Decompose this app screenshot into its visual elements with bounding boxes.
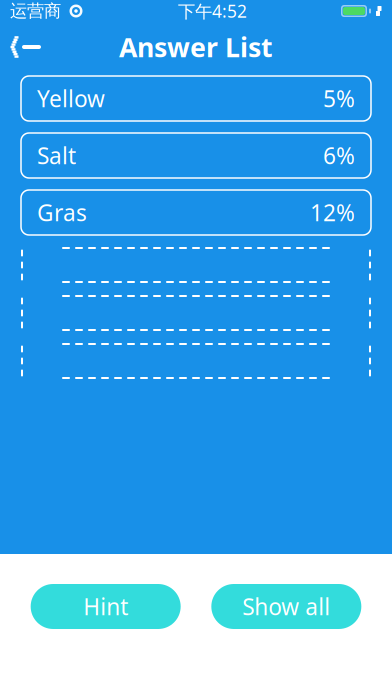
staticText: 运营商: [10, 0, 61, 22]
button[interactable]: Empty answer slot: [21, 343, 371, 379]
staticText: Yellow: [37, 83, 105, 113]
button[interactable]: Back: [0, 28, 52, 66]
staticText: Answer List: [119, 29, 273, 65]
staticText: Show all: [242, 591, 330, 621]
button[interactable]: Empty answer slot: [21, 247, 371, 283]
button[interactable]: Gras: [21, 190, 371, 235]
staticText: Salt: [37, 140, 76, 170]
staticText: Gras: [37, 197, 87, 227]
button[interactable]: Hint: [31, 584, 181, 629]
staticText: 下午4:52: [178, 0, 247, 22]
button[interactable]: Empty answer slot: [21, 295, 371, 331]
button[interactable]: Show all: [211, 584, 361, 629]
button[interactable]: Salt: [21, 133, 371, 178]
staticText: 6%: [323, 140, 355, 170]
staticText: 12%: [310, 197, 355, 227]
staticText: Hint: [83, 591, 128, 621]
staticText: 5%: [323, 83, 355, 113]
button[interactable]: Yellow: [21, 76, 371, 121]
